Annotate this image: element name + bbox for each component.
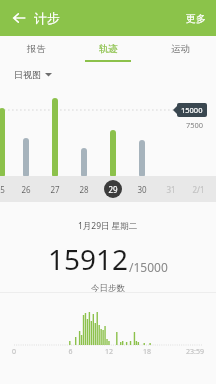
button[interactable]: 轨迹 bbox=[72, 36, 144, 62]
button[interactable]: 2/1 bbox=[187, 178, 209, 200]
staticText: 28 bbox=[79, 184, 89, 195]
button[interactable]: 31 bbox=[160, 178, 182, 200]
staticText: 12 bbox=[90, 347, 128, 357]
staticText: 27 bbox=[50, 184, 60, 195]
staticText: 更多 bbox=[186, 12, 206, 25]
button[interactable]: 更多 bbox=[176, 6, 216, 31]
staticText: 5 bbox=[0, 184, 5, 195]
button[interactable]: 日视图 bbox=[14, 69, 52, 80]
staticText: 运动 bbox=[171, 43, 190, 55]
button[interactable]: 30 bbox=[131, 178, 153, 200]
button[interactable]: 运动 bbox=[144, 36, 216, 62]
staticText: 轨迹 bbox=[99, 43, 118, 55]
staticText: 报告 bbox=[27, 43, 46, 55]
staticText: 23:59 bbox=[166, 347, 204, 357]
staticText: 15912 bbox=[48, 240, 129, 278]
button[interactable]: 28 bbox=[73, 178, 95, 200]
staticText: 26 bbox=[21, 184, 31, 195]
staticText: 7500 bbox=[186, 120, 204, 130]
staticText: 日视图 bbox=[14, 69, 41, 80]
staticText: 15000 bbox=[181, 105, 203, 115]
button[interactable]: Back bbox=[6, 5, 32, 31]
staticText: 计步 bbox=[34, 10, 60, 26]
staticText: 31 bbox=[166, 184, 176, 195]
staticText: 1月29日 星期二 bbox=[78, 220, 138, 232]
button[interactable]: 26 bbox=[15, 178, 37, 200]
button[interactable]: 5 bbox=[0, 178, 13, 200]
staticText: 6 bbox=[51, 347, 90, 357]
staticText: 0 bbox=[12, 347, 51, 357]
staticText: 29 bbox=[108, 184, 118, 195]
staticText: /15000 bbox=[129, 259, 168, 275]
staticText: 2/1 bbox=[192, 184, 205, 195]
button[interactable]: 27 bbox=[44, 178, 66, 200]
button[interactable]: 报告 bbox=[0, 36, 72, 62]
staticText: 今日步数 bbox=[91, 283, 125, 292]
button[interactable]: 29 bbox=[102, 178, 124, 200]
staticText: 30 bbox=[137, 184, 147, 195]
staticText: 18 bbox=[128, 347, 166, 357]
